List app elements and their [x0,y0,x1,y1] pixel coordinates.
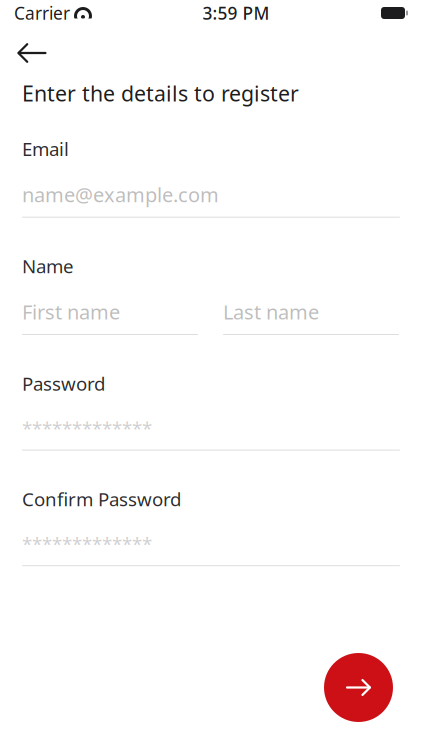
staticText: Password [22,371,105,396]
staticText: Email [22,136,69,161]
staticText: name@example.com [22,181,219,208]
button[interactable]: Back [0,38,64,68]
staticText: ************* [22,416,152,441]
button[interactable]: Continue [324,653,393,722]
staticText: Enter the details to register [22,79,299,107]
staticText: Last name [223,298,319,325]
staticText: Carrier [14,1,70,24]
staticText: 3:59 PM [202,1,269,24]
staticText: ************* [22,531,152,556]
staticText: First name [22,298,120,325]
staticText: Confirm Password [22,487,181,511]
staticText: Name [22,254,74,278]
